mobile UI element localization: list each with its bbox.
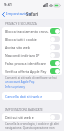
staticText: Nascondi indirizzo IP: [5, 53, 49, 58]
other: Indietro: [2, 12, 5, 17]
button[interactable]: Disattivato: [50, 36, 60, 42]
staticText: un account Apple Pay.: [5, 80, 35, 84]
button[interactable]: Nascondi indirizzo IP: [2, 51, 62, 59]
button[interactable]: Attivato: [50, 60, 60, 66]
staticText: Avvisa sito web fraudolento: [5, 45, 49, 50]
staticText: Cancella dati siti web e cronologia: [5, 94, 59, 99]
button[interactable]: Blocca tutti i cookie: [2, 35, 62, 43]
staticText: Info su privacy: [5, 85, 25, 89]
button[interactable]: Blocca tracciamento cross-site: [2, 27, 62, 35]
button[interactable]: Verifica offerta Apple Pay: [2, 67, 62, 75]
staticText: Blocca tutti i cookie: [5, 37, 49, 42]
button[interactable]: Attivato: [50, 28, 60, 34]
staticText: navigazione. Questa operazione non influ…: [5, 126, 60, 130]
staticText: IMPOSTAZIONI AVANZATE: [5, 108, 43, 112]
button[interactable]: Disattivato: [50, 52, 60, 58]
button[interactable]: Disattivato: [50, 114, 60, 120]
button[interactable]: Cancella dati siti web e cronologia: [2, 92, 62, 100]
button[interactable]: Falso prova a identificare: [2, 59, 62, 67]
staticText: Safari: [26, 11, 39, 17]
staticText: Consenti ai siti web di verificare se ha…: [5, 76, 60, 80]
staticText: PRIVACY E SICUREZZA: [5, 22, 37, 26]
button[interactable]: Dati sui siti web e pubblicità: [2, 113, 62, 121]
button[interactable]: Attivato: [50, 68, 60, 74]
staticText: Verifica offerta Apple Pay: [5, 69, 49, 74]
staticText: Falso prova a identificare: [5, 61, 49, 66]
button[interactable]: Indietro: [0, 9, 34, 19]
staticText: Impostazioni: [6, 11, 31, 17]
button[interactable]: Avvisa sito web fraudolento: [2, 43, 62, 51]
staticText: Cancella la cronologia, i cookie e gli a…: [5, 122, 60, 126]
staticText: Blocca tracciamento cross-site: [5, 29, 49, 34]
button[interactable]: Disattivato: [50, 44, 60, 50]
staticText: 9:41: [4, 2, 12, 7]
staticText: Dati sui siti web e pubblicità: [5, 115, 49, 120]
